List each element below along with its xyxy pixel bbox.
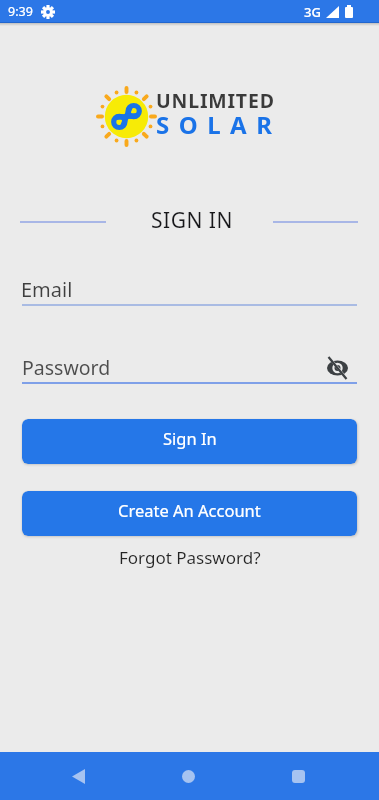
staticText: SOLAR bbox=[156, 108, 282, 141]
button[interactable] bbox=[182, 770, 195, 783]
staticText: Create An Account bbox=[118, 499, 261, 521]
staticText: 3G bbox=[304, 3, 321, 21]
staticText: UNLIMITED bbox=[156, 87, 275, 114]
button[interactable]: Forgot Password? bbox=[0, 546, 379, 569]
button[interactable] bbox=[72, 769, 85, 784]
staticText: 9:39 bbox=[8, 3, 33, 20]
staticText: Email bbox=[21, 276, 73, 303]
staticText: SIGN IN bbox=[151, 206, 233, 235]
button[interactable]: Sign In bbox=[22, 419, 357, 464]
staticText: Forgot Password? bbox=[119, 546, 261, 569]
button[interactable]: Create An Account bbox=[22, 491, 357, 536]
staticText: Sign In bbox=[163, 427, 217, 449]
button[interactable] bbox=[292, 770, 305, 783]
staticText: Password bbox=[22, 354, 111, 381]
button[interactable] bbox=[326, 357, 348, 379]
